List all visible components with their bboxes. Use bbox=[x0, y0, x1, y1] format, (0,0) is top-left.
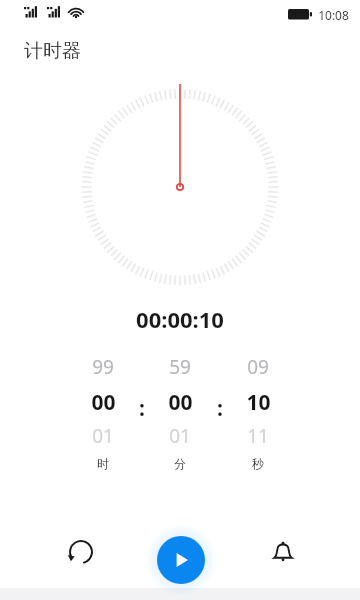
staticText: 59 bbox=[169, 354, 191, 380]
staticText: 11 bbox=[247, 423, 269, 449]
staticText: 10:08 bbox=[318, 7, 349, 23]
button[interactable]: Reset bbox=[57, 528, 105, 576]
staticText: : bbox=[217, 394, 223, 420]
staticText: 计时器 bbox=[24, 39, 81, 63]
staticText: 00 bbox=[91, 388, 116, 417]
staticText: 01 bbox=[169, 423, 191, 449]
staticText: 分 bbox=[174, 456, 186, 471]
button[interactable]: 99 bbox=[75, 350, 131, 474]
staticText: : bbox=[139, 394, 145, 420]
staticText: 01 bbox=[92, 423, 114, 449]
staticText: 10 bbox=[246, 388, 271, 417]
staticText: 99 bbox=[92, 354, 114, 380]
button[interactable]: 09 bbox=[230, 350, 286, 474]
button[interactable]: 59 bbox=[152, 350, 208, 474]
staticText: 00:00:10 bbox=[136, 304, 224, 334]
staticText: 秒 bbox=[252, 456, 264, 471]
button[interactable]: Start timer bbox=[157, 536, 205, 584]
button[interactable]: Ringtone bbox=[259, 528, 307, 576]
staticText: 时 bbox=[97, 456, 109, 471]
staticText: 00 bbox=[168, 388, 193, 417]
staticText: 09 bbox=[247, 354, 269, 380]
